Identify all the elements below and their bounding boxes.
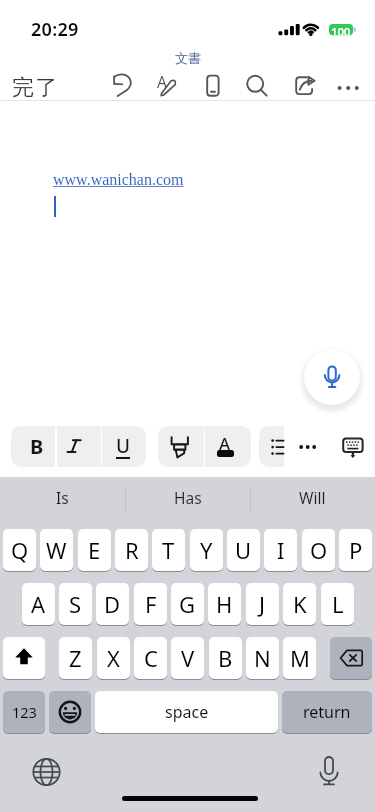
button[interactable]: P — [339, 529, 372, 571]
button[interactable]: return — [282, 691, 372, 733]
staticText: W — [46, 535, 67, 565]
button[interactable] — [148, 68, 184, 105]
button[interactable] — [49, 691, 91, 733]
staticText: Has — [174, 487, 202, 508]
button[interactable] — [259, 426, 284, 467]
staticText: N — [254, 643, 271, 673]
button[interactable]: D — [96, 583, 129, 625]
staticText: space — [165, 701, 209, 723]
button[interactable]: T — [152, 529, 185, 571]
staticText: Will — [299, 487, 326, 508]
button[interactable] — [3, 637, 45, 679]
staticText: 123 — [12, 702, 37, 722]
staticText: X — [107, 643, 120, 673]
button[interactable]: V — [171, 637, 204, 679]
staticText: I — [277, 535, 285, 565]
staticText: D — [104, 589, 121, 619]
button[interactable]: O — [302, 529, 335, 571]
button[interactable]: X — [97, 637, 130, 679]
staticText: Is — [56, 487, 69, 508]
button[interactable] — [102, 426, 146, 467]
button[interactable]: Q — [3, 529, 36, 571]
button[interactable]: F — [134, 583, 167, 625]
button[interactable] — [28, 753, 66, 791]
button[interactable] — [205, 426, 251, 467]
button[interactable] — [304, 349, 360, 405]
button[interactable]: www.wanichan.com — [53, 171, 184, 189]
button[interactable]: Has — [125, 475, 250, 520]
button[interactable]: C — [134, 637, 167, 679]
button[interactable]: K — [283, 583, 316, 625]
button[interactable]: N — [246, 637, 279, 679]
staticText: B — [30, 433, 44, 460]
staticText: A — [157, 71, 167, 92]
staticText: return — [303, 701, 351, 723]
button[interactable]: H — [208, 583, 241, 625]
button[interactable] — [195, 68, 227, 105]
staticText: 20:29 — [31, 17, 79, 42]
staticText: 100 — [331, 24, 351, 35]
button[interactable]: Is — [0, 475, 125, 520]
staticText: T — [162, 535, 175, 565]
button[interactable]: R — [115, 529, 148, 571]
staticText: B — [218, 643, 233, 673]
button[interactable]: W — [40, 529, 73, 571]
button[interactable] — [158, 426, 204, 467]
staticText: V — [181, 643, 195, 673]
button[interactable]: Z — [59, 637, 92, 679]
staticText: H — [216, 589, 233, 619]
button[interactable] — [312, 748, 348, 790]
button[interactable]: space — [95, 691, 278, 733]
button[interactable]: E — [78, 529, 111, 571]
staticText: www.wanichan.com — [53, 171, 184, 189]
button[interactable]: L — [321, 583, 354, 625]
staticText: L — [332, 589, 344, 619]
staticText: C — [144, 643, 158, 673]
staticText: A — [31, 589, 46, 619]
button[interactable]: Will — [250, 475, 375, 520]
button[interactable] — [11, 426, 55, 467]
button[interactable]: I — [264, 529, 297, 571]
button[interactable]: A — [22, 583, 55, 625]
button[interactable]: 123 — [3, 691, 45, 733]
button[interactable] — [57, 426, 101, 467]
staticText: 完了 — [12, 74, 59, 102]
button[interactable]: Y — [190, 529, 223, 571]
button[interactable] — [334, 68, 364, 105]
staticText: Q — [11, 535, 29, 565]
staticText: Y — [200, 535, 213, 565]
staticText: Z — [69, 643, 82, 673]
button[interactable] — [288, 68, 322, 105]
staticText: P — [349, 535, 363, 565]
staticText: A — [219, 432, 231, 455]
button[interactable] — [330, 637, 372, 679]
button[interactable]: B — [209, 637, 242, 679]
staticText: M — [290, 643, 310, 673]
button[interactable]: M — [283, 637, 316, 679]
button[interactable] — [240, 68, 274, 105]
button[interactable] — [293, 430, 323, 464]
staticText: E — [88, 535, 101, 565]
button[interactable]: U — [227, 529, 260, 571]
staticText: O — [310, 535, 328, 565]
staticText: R — [125, 535, 139, 565]
staticText: G — [179, 589, 196, 619]
staticText: U — [235, 535, 252, 565]
staticText: J — [259, 589, 266, 619]
button[interactable]: S — [59, 583, 92, 625]
staticText: U — [116, 433, 131, 459]
staticText: S — [69, 589, 82, 619]
staticText: 文書 — [175, 50, 201, 65]
button[interactable]: J — [246, 583, 279, 625]
button[interactable] — [108, 68, 145, 105]
staticText: F — [145, 589, 157, 619]
button[interactable]: G — [171, 583, 204, 625]
staticText: K — [293, 589, 307, 619]
button[interactable]: 完了 — [12, 74, 59, 102]
button[interactable] — [337, 430, 371, 464]
